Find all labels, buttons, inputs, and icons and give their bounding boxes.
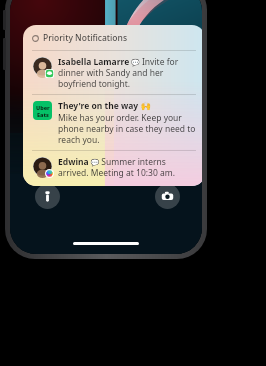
staticText: 41m ago (158, 161, 179, 168)
staticText: They're on the way 🙌 (58, 100, 152, 112)
button[interactable]: Priority Notifications (23, 25, 202, 186)
staticText: Uber (36, 104, 50, 111)
staticText: Mike has your order. Keep your phone nea… (58, 112, 196, 145)
staticText: Lia Longo Savita booked house… (50, 161, 144, 169)
staticText: Isabella Lamarre 💬 Invite for dinner wit… (58, 56, 196, 89)
button[interactable]: Isabella Lamarre 💬 Invite for dinner wit… (32, 56, 196, 89)
staticText: Eats (37, 111, 49, 118)
button[interactable]: Edwina 💬 Summer interns arrived. Meeting… (32, 156, 196, 178)
button[interactable]: Lia Longo Savita booked house… (31, 156, 183, 172)
button[interactable]: Uber (32, 100, 196, 145)
button[interactable]: Flashlight (35, 184, 60, 209)
button[interactable]: Camera (155, 184, 180, 209)
staticText: Edwina 💬 Summer interns arrived. Meeting… (58, 156, 196, 178)
staticText: Priority Notifications (43, 32, 128, 44)
